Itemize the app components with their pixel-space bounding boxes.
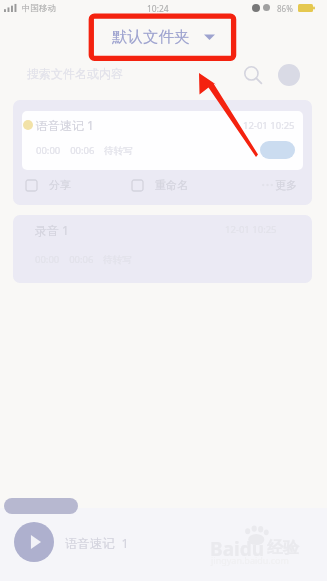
button[interactable]: 分享 xyxy=(26,174,71,196)
button[interactable]: 更多 xyxy=(262,174,297,196)
staticText: Baidu xyxy=(210,536,265,562)
staticText: jingyan.baidu.com xyxy=(211,554,289,566)
button[interactable]: Play xyxy=(14,522,54,562)
staticText: 默认文件夹 xyxy=(112,27,190,47)
button[interactable]: 默认文件夹 xyxy=(0,27,327,47)
button[interactable]: 语音速记 1 xyxy=(13,100,312,205)
staticText: 00:00 00:06 待转写 xyxy=(35,253,132,266)
staticText: 重命名 xyxy=(155,178,188,192)
staticText: 10:24 xyxy=(147,3,169,15)
button[interactable] xyxy=(260,141,295,159)
staticText: 搜索文件名或内容 xyxy=(27,66,123,81)
staticText: 分享 xyxy=(49,178,71,192)
staticText: 录音 1 xyxy=(35,222,69,238)
button[interactable]: Search xyxy=(238,60,268,90)
staticText: 经验 xyxy=(267,538,299,558)
button[interactable]: Now playing xyxy=(4,498,78,514)
staticText: 00:00 00:06 待转写 xyxy=(36,144,133,157)
staticText: 语音速记 1 xyxy=(65,535,129,552)
staticText: 12-01 10:25 xyxy=(243,119,295,132)
staticText: 中国移动 xyxy=(22,3,56,14)
button[interactable]: 重命名 xyxy=(132,174,188,196)
staticText: 12-01 10:25 xyxy=(225,223,277,236)
staticText: 86% xyxy=(277,3,293,14)
staticText: 语音速记 1 xyxy=(36,117,94,133)
staticText: 更多 xyxy=(275,178,297,192)
button[interactable]: Profile xyxy=(278,64,300,86)
